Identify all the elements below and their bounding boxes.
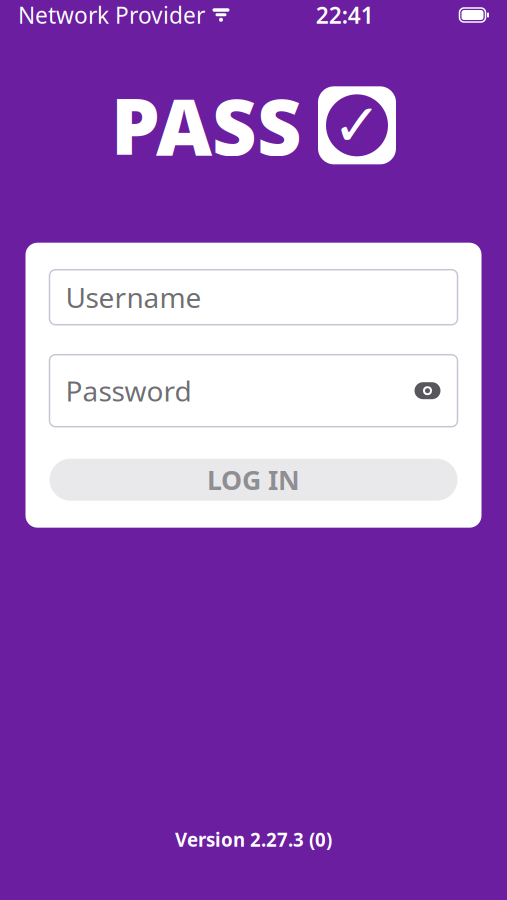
button[interactable]: Password	[49, 355, 457, 427]
staticText: Network Provider	[18, 0, 205, 30]
button[interactable]: Show password	[413, 381, 441, 401]
staticText: 22:41	[316, 0, 374, 30]
staticText: Version 2.27.3 (0)	[175, 827, 332, 852]
button[interactable]: Username	[49, 270, 457, 325]
staticText: LOG IN	[207, 462, 300, 497]
staticText: Password	[65, 372, 191, 409]
button[interactable]: LOG IN	[49, 459, 457, 501]
staticText: Username	[65, 279, 201, 316]
staticText: ✓	[332, 92, 381, 159]
staticText: PASS	[111, 74, 302, 177]
